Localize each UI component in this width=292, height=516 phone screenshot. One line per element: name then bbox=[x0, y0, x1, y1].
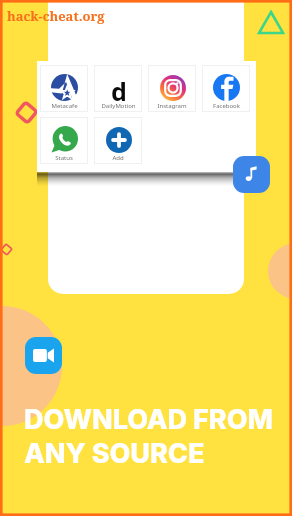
button[interactable]: Status bbox=[40, 117, 88, 164]
staticText: Instagram bbox=[157, 102, 187, 110]
staticText: DailyMotion bbox=[101, 102, 136, 110]
button[interactable]: d bbox=[94, 65, 142, 112]
staticText: Add bbox=[112, 154, 124, 162]
staticText: hack-cheat.org bbox=[7, 7, 105, 25]
button[interactable]: Video bbox=[25, 337, 62, 374]
staticText: Metacafe bbox=[51, 102, 78, 110]
staticText: Facebook bbox=[213, 102, 240, 110]
button[interactable]: Metacafe bbox=[40, 65, 88, 112]
button[interactable]: Add bbox=[94, 117, 142, 164]
button[interactable]: Instagram bbox=[148, 65, 196, 112]
staticText: DOWNLOAD FROM bbox=[24, 403, 274, 436]
staticText: ANY SOURCE bbox=[24, 437, 205, 470]
staticText: Status bbox=[55, 154, 73, 162]
button[interactable]: Music bbox=[233, 156, 270, 193]
button[interactable]: Facebook bbox=[202, 65, 250, 112]
staticText: d bbox=[111, 74, 127, 101]
